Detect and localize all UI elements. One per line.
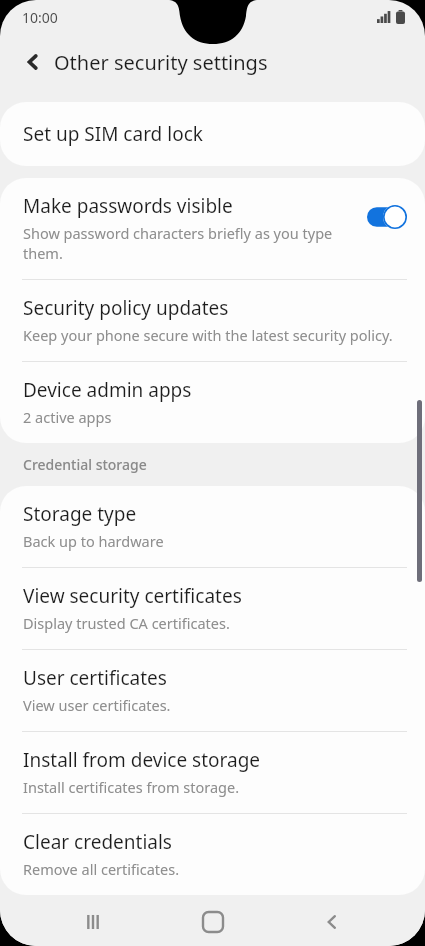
button[interactable]: Security policy updates xyxy=(0,280,425,361)
staticText: Data protection xyxy=(23,907,128,926)
button[interactable]: Recent apps xyxy=(68,898,118,946)
staticText: Other security settings xyxy=(54,49,268,76)
staticText: Clear credentials xyxy=(23,829,172,855)
button[interactable]: Clear credentials xyxy=(0,814,425,895)
staticText: Back up to hardware xyxy=(23,531,164,551)
staticText: Show password characters briefly as you … xyxy=(23,223,357,263)
button[interactable]: Storage type xyxy=(0,486,425,567)
staticText: Display trusted CA certificates. xyxy=(23,613,230,633)
button[interactable]: View security certificates xyxy=(0,568,425,649)
staticText: 2 active apps xyxy=(23,407,112,427)
button[interactable]: Install from device storage xyxy=(0,732,425,813)
staticText: View security certificates xyxy=(23,583,242,609)
staticText: Device admin apps xyxy=(23,377,192,403)
staticText: Install certificates from storage. xyxy=(23,777,240,797)
button[interactable]: Set up SIM card lock xyxy=(0,102,425,166)
button[interactable]: Back xyxy=(307,898,357,946)
staticText: Make passwords visible xyxy=(23,193,233,219)
staticText: Storage type xyxy=(23,501,137,527)
staticText: User certificates xyxy=(23,665,167,691)
button[interactable]: Make passwords visible xyxy=(0,178,425,279)
staticText: Security policy updates xyxy=(23,295,229,321)
button[interactable]: User certificates xyxy=(0,650,425,731)
button[interactable]: Back xyxy=(14,43,52,81)
staticText: Credential storage xyxy=(23,455,147,474)
staticText: View user certificates. xyxy=(23,695,171,715)
staticText: Keep your phone secure with the latest s… xyxy=(23,325,393,345)
staticText: Install from device storage xyxy=(23,747,261,773)
staticText: 10:00 xyxy=(22,8,58,27)
button[interactable]: Device admin apps xyxy=(0,362,425,443)
button[interactable]: Home xyxy=(188,898,238,946)
staticText: Remove all certificates. xyxy=(23,859,180,879)
staticText: Set up SIM card lock xyxy=(23,121,203,147)
